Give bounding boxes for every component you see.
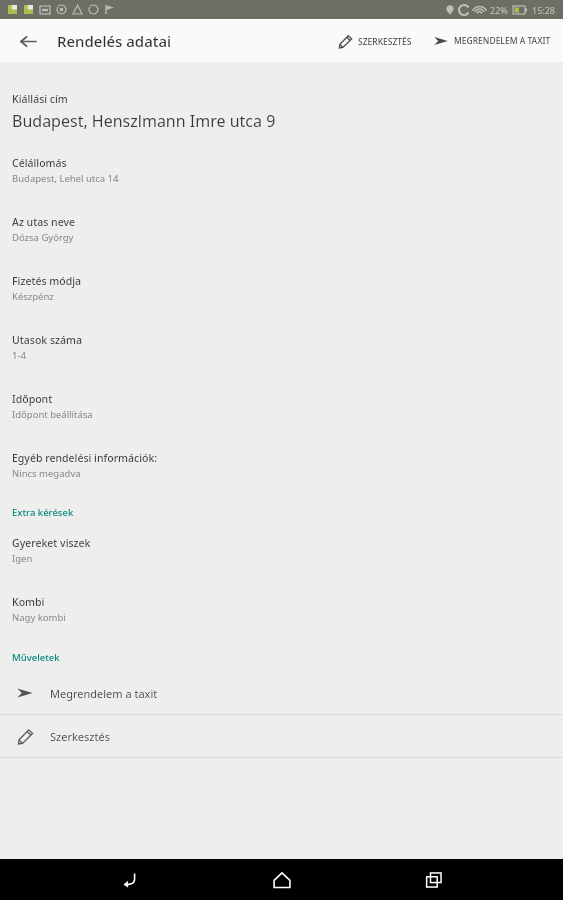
staticText: Az utas neve — [12, 215, 76, 229]
staticText: Dózsa György — [12, 231, 74, 244]
staticText: Műveletek — [12, 651, 60, 664]
staticText: MEGRENDELEM A TAXIT — [454, 35, 551, 47]
staticText: Megrendelem a taxit — [50, 686, 158, 701]
staticText: 1-4 — [12, 349, 26, 362]
button[interactable]: MEGRENDELEM A TAXIT — [428, 26, 557, 56]
staticText: Szerkesztés — [50, 729, 110, 744]
staticText: Nagy kombi — [12, 611, 66, 624]
staticText: Célállomás — [12, 156, 67, 170]
button[interactable]: SZERKESZTÉS — [333, 27, 418, 56]
button[interactable]: Szerkesztés — [0, 715, 563, 757]
staticText: Egyéb rendelési információk: — [12, 451, 158, 465]
staticText: Gyereket viszek — [12, 536, 91, 550]
button[interactable]: Megrendelem a taxit — [0, 672, 563, 714]
staticText: Nincs megadva — [12, 467, 81, 480]
staticText: Fizetés módja — [12, 274, 82, 288]
staticText: Igen — [12, 552, 33, 565]
button[interactable]: Vissza — [8, 22, 46, 60]
staticText: Kombi — [12, 595, 45, 609]
staticText: Időpont beállítása — [12, 408, 93, 421]
staticText: 15:28 — [532, 4, 556, 16]
staticText: Kiállási cím — [12, 92, 68, 106]
staticText: Utasok száma — [12, 333, 82, 347]
staticText: Budapest, Henszlmann Imre utca 9 — [12, 110, 276, 132]
staticText: Budapest, Lehel utca 14 — [12, 172, 119, 185]
button[interactable]: Home — [258, 859, 306, 900]
staticText: Időpont — [12, 392, 53, 406]
staticText: 22% — [490, 4, 508, 16]
staticText: Készpénz — [12, 290, 54, 303]
button[interactable]: Recents — [410, 859, 458, 900]
staticText: Rendelés adatai — [57, 31, 172, 51]
button[interactable]: Back — [105, 859, 153, 900]
staticText: SZERKESZTÉS — [358, 36, 412, 48]
staticText: Extra kérések — [12, 506, 74, 519]
